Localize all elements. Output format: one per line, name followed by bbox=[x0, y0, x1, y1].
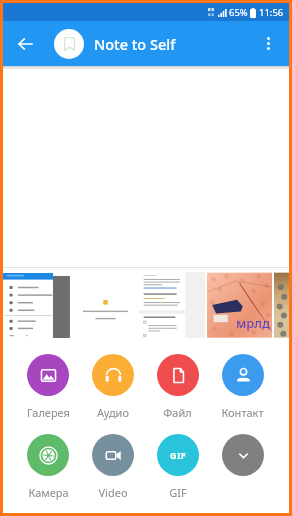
button[interactable]: Контакт bbox=[210, 354, 275, 420]
staticText: Файл bbox=[163, 405, 192, 420]
button[interactable]: Show more bbox=[210, 434, 275, 476]
staticText: Галерея bbox=[27, 405, 70, 420]
button[interactable]: Файл bbox=[145, 354, 210, 420]
button[interactable]: Камера bbox=[16, 434, 80, 500]
staticText: Камера bbox=[28, 485, 69, 500]
staticText: Video bbox=[98, 485, 128, 500]
staticText: GIF bbox=[170, 449, 187, 461]
button[interactable]: Back bbox=[8, 21, 43, 66]
staticText: GIF bbox=[169, 485, 187, 500]
staticText: Контакт bbox=[221, 405, 264, 420]
button[interactable]: Video bbox=[80, 434, 145, 500]
button[interactable]: More options bbox=[250, 21, 286, 66]
button[interactable]: Photo 5 bbox=[274, 272, 289, 338]
staticText: Note to Self bbox=[94, 34, 176, 54]
button[interactable]: Photo 4 bbox=[207, 272, 272, 338]
staticText: 11:56 bbox=[259, 6, 284, 19]
button[interactable]: Photo 2 bbox=[73, 272, 138, 338]
button[interactable]: Аудио bbox=[80, 354, 145, 420]
staticText: Аудио bbox=[97, 405, 129, 420]
button[interactable]: Photo 3 bbox=[139, 272, 205, 338]
button[interactable]: Галерея bbox=[16, 354, 80, 420]
button[interactable]: GIF bbox=[145, 434, 210, 500]
staticText: 65% bbox=[229, 6, 248, 19]
staticText: мрлд bbox=[236, 314, 271, 332]
button[interactable]: Photo 1 bbox=[3, 272, 72, 338]
